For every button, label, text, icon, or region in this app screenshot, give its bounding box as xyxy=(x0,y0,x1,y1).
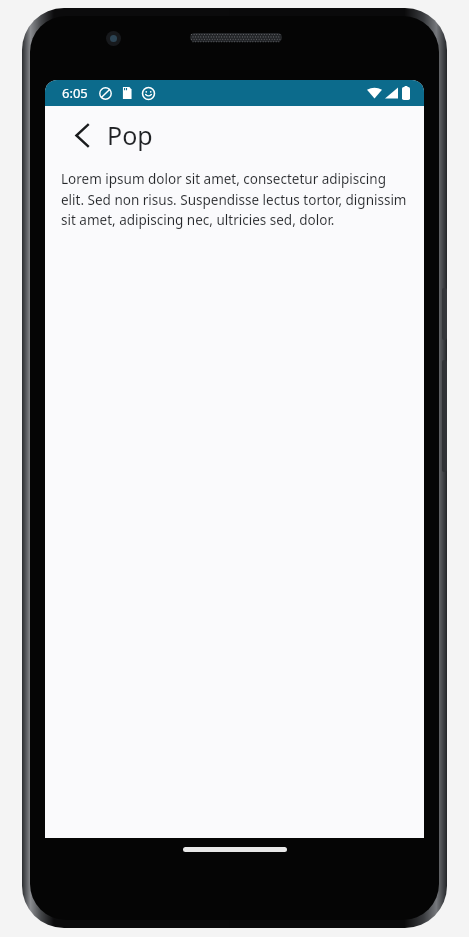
staticText: 6:05 xyxy=(62,84,88,102)
staticText: Lorem ipsum dolor sit amet, consectetur … xyxy=(61,170,408,229)
button[interactable]: Back xyxy=(61,114,103,156)
staticText: Pop xyxy=(107,118,153,152)
